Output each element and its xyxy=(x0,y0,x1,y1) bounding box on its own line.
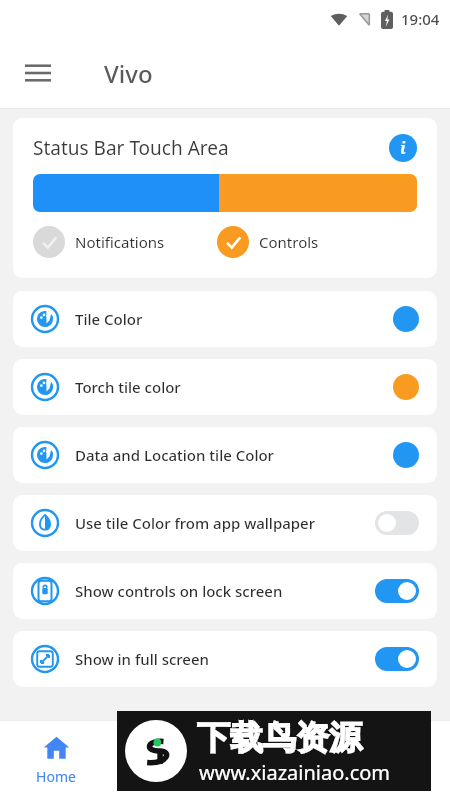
staticText: Tile Color xyxy=(75,309,143,329)
staticText: Show in full screen xyxy=(75,649,209,669)
staticText: Status Bar Touch Area xyxy=(33,135,229,161)
staticText: Vivo xyxy=(104,57,153,90)
staticText: Data and Location tile Color xyxy=(75,445,274,465)
staticText: www.xiazainiao.com xyxy=(199,759,391,786)
staticText: Home xyxy=(36,767,76,786)
button[interactable]: Torch tile color xyxy=(13,359,437,415)
staticText: Notifications xyxy=(75,232,165,252)
button[interactable]: Home xyxy=(14,734,98,786)
button[interactable]: Use tile Color from app wallpaper xyxy=(13,495,437,551)
button[interactable]: Controls xyxy=(217,226,319,258)
button[interactable]: Open navigation menu xyxy=(14,49,62,97)
staticText: 下载鸟资源 xyxy=(197,717,362,759)
button[interactable]: Tile Color xyxy=(13,291,437,347)
button[interactable]: Information xyxy=(389,134,417,162)
staticText: 19:04 xyxy=(401,9,440,29)
button[interactable]: Show in full screen xyxy=(13,631,437,687)
staticText: Controls xyxy=(259,232,319,252)
staticText: Torch tile color xyxy=(75,377,181,397)
button[interactable]: Notifications xyxy=(33,226,165,258)
button[interactable]: Data and Location tile Color xyxy=(13,427,437,483)
staticText: Show controls on lock screen xyxy=(75,581,283,601)
button[interactable]: Show controls on lock screen xyxy=(13,563,437,619)
button[interactable]: Touch area split slider xyxy=(33,174,417,212)
staticText: i xyxy=(400,137,406,159)
staticText: Use tile Color from app wallpaper xyxy=(75,513,316,533)
